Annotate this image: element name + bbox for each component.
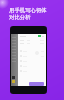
button[interactable]: Phone preview [10, 26, 47, 94]
button[interactable] [29, 82, 44, 86]
staticText: 用手机写心得体 [9, 7, 47, 14]
staticText: 对比分析 [9, 14, 31, 21]
